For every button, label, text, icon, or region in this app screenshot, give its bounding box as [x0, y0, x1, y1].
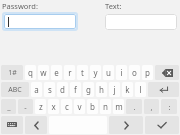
- staticText: c: [65, 101, 69, 112]
- button[interactable]: h: [96, 82, 107, 97]
- button[interactable]: Done: [145, 116, 179, 134]
- staticText: ABC: [8, 85, 22, 95]
- button[interactable]: z: [35, 99, 46, 114]
- staticText: v: [77, 101, 82, 112]
- button[interactable]: _: [1, 99, 16, 114]
- staticText: n: [103, 101, 108, 112]
- button[interactable]: s: [44, 82, 55, 97]
- staticText: p: [145, 67, 150, 78]
- staticText: b: [90, 101, 95, 112]
- staticText: g: [86, 84, 91, 95]
- button[interactable]: k: [122, 82, 133, 97]
- staticText: f: [74, 84, 77, 95]
- button[interactable]: n: [100, 99, 111, 114]
- button[interactable]: Backspace: [155, 65, 179, 80]
- button[interactable]: d: [57, 82, 68, 97]
- button[interactable]: b: [87, 99, 98, 114]
- button[interactable]: w: [38, 65, 49, 80]
- staticText: r: [68, 67, 72, 78]
- staticText: _: [7, 102, 11, 112]
- button[interactable]: q: [25, 65, 36, 80]
- staticText: m: [115, 101, 123, 112]
- button[interactable]: Next: [109, 116, 143, 134]
- button[interactable]: l: [135, 82, 146, 97]
- staticText: :: [168, 102, 171, 112]
- staticText: d: [60, 84, 65, 95]
- staticText: Password:: [2, 1, 38, 11]
- button[interactable]: u: [103, 65, 114, 80]
- button[interactable]: t: [77, 65, 88, 80]
- staticText: .: [133, 102, 136, 112]
- button[interactable]: :: [161, 99, 177, 114]
- button[interactable]: m: [113, 99, 124, 114]
- button[interactable]: Enter: [148, 82, 179, 97]
- staticText: j: [113, 84, 116, 95]
- button[interactable]: v: [74, 99, 85, 114]
- staticText: y: [93, 67, 98, 78]
- button[interactable]: o: [129, 65, 140, 80]
- staticText: t: [81, 67, 84, 78]
- staticText: i: [120, 67, 123, 78]
- staticText: a: [34, 84, 39, 95]
- button[interactable]: y: [90, 65, 101, 80]
- button[interactable]: [4, 14, 76, 29]
- button[interactable]: Hide keyboard: [1, 116, 23, 134]
- staticText: ,: [150, 102, 153, 112]
- button[interactable]: g: [83, 82, 94, 97]
- staticText: Text:: [105, 1, 122, 11]
- button[interactable]: [105, 14, 177, 30]
- staticText: 1#: [8, 68, 17, 78]
- staticText: -: [24, 102, 27, 112]
- staticText: q: [28, 67, 33, 78]
- button[interactable]: f: [70, 82, 81, 97]
- button[interactable]: p: [142, 65, 153, 80]
- button[interactable]: e: [51, 65, 62, 80]
- staticText: u: [106, 67, 111, 78]
- staticText: z: [39, 101, 43, 112]
- staticText: s: [48, 84, 52, 95]
- button[interactable]: ,: [144, 99, 159, 114]
- button[interactable]: i: [116, 65, 127, 80]
- button[interactable]: x: [48, 99, 59, 114]
- staticText: h: [99, 84, 104, 95]
- button[interactable]: j: [109, 82, 120, 97]
- staticText: e: [54, 67, 59, 78]
- button[interactable]: c: [61, 99, 72, 114]
- staticText: x: [51, 101, 56, 112]
- staticText: w: [40, 67, 47, 78]
- staticText: l: [139, 84, 142, 95]
- staticText: k: [125, 84, 130, 95]
- button[interactable]: .: [126, 99, 142, 114]
- button[interactable]: r: [64, 65, 75, 80]
- button[interactable]: Symbols: [1, 65, 23, 80]
- staticText: o: [132, 67, 137, 78]
- button[interactable]: Previous: [25, 116, 47, 134]
- button[interactable]: a: [31, 82, 42, 97]
- button[interactable]: -: [18, 99, 33, 114]
- button[interactable]: Letter case: [1, 82, 29, 97]
